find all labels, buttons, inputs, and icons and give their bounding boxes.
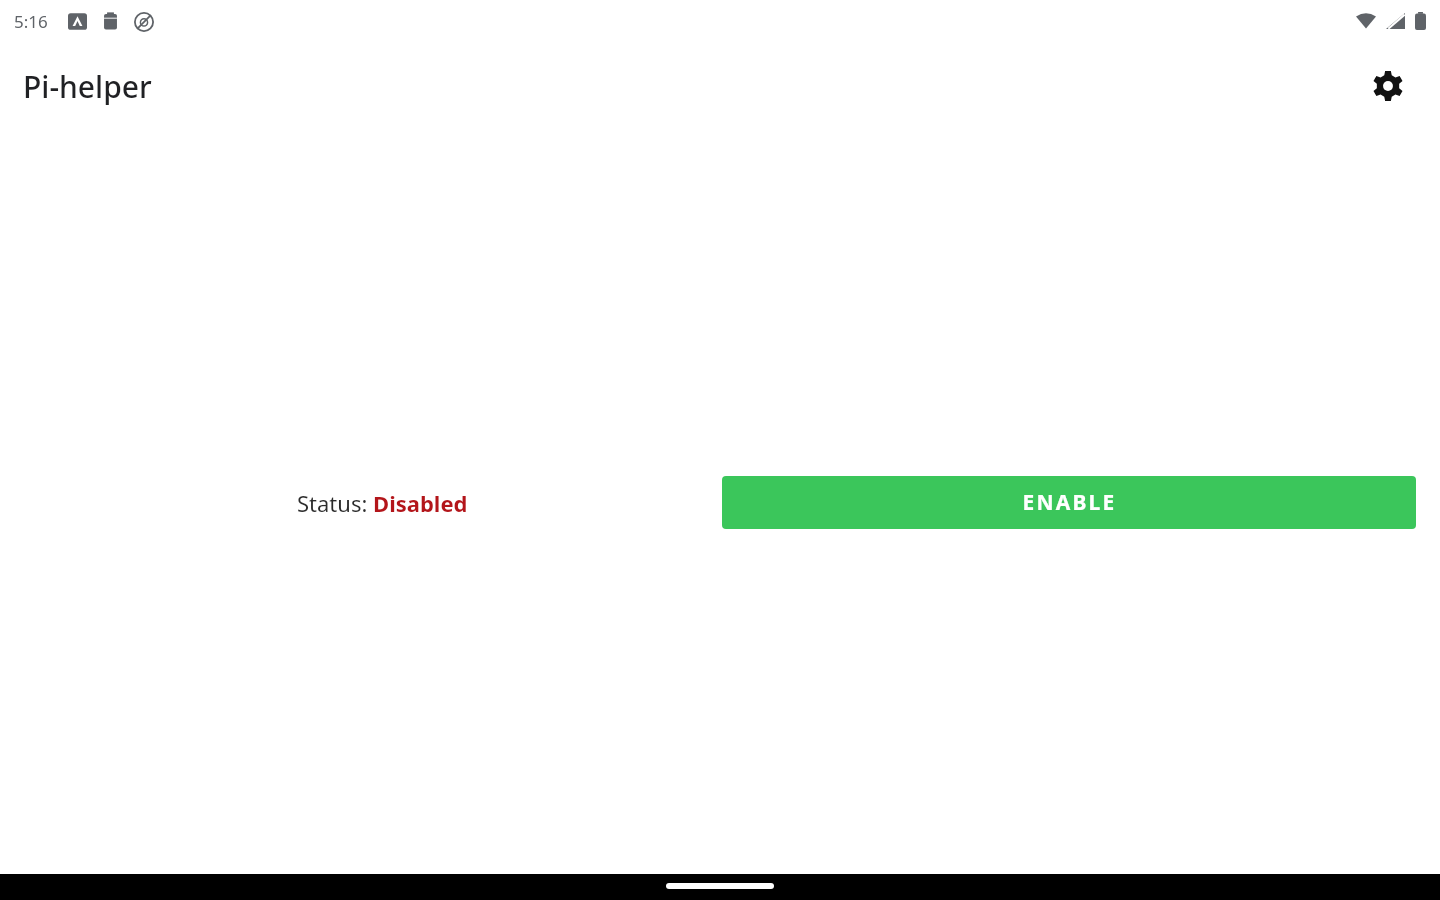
button[interactable]: ENABLE	[722, 476, 1416, 529]
staticText: 5:16	[14, 10, 48, 33]
button[interactable]: Settings	[1360, 58, 1416, 114]
staticText: Pi-helper	[23, 66, 152, 107]
staticText: ENABLE	[1022, 488, 1117, 517]
staticText: Status: Disabled	[297, 488, 468, 518]
